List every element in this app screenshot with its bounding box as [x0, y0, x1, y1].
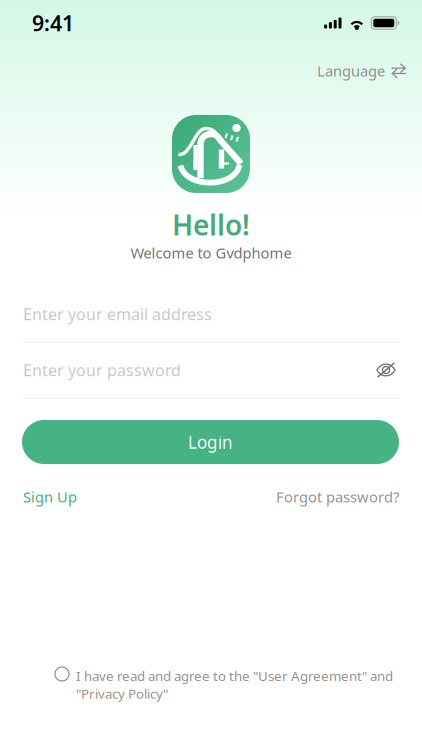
- staticText: Forgot password?: [276, 487, 399, 506]
- staticText: Hello!: [172, 206, 250, 243]
- button[interactable]: Sign Up: [23, 487, 77, 506]
- staticText: Sign Up: [23, 487, 77, 506]
- button[interactable]: Login: [22, 420, 399, 464]
- button[interactable]: Language: [313, 55, 411, 86]
- staticText: Login: [188, 430, 233, 453]
- staticText: I have read and agree to the "User Agree…: [76, 667, 393, 702]
- button[interactable]: Agree to the User Agreement and Privacy …: [55, 667, 69, 681]
- button[interactable]: Show password: [373, 358, 399, 381]
- staticText: Enter your password: [23, 359, 181, 381]
- staticText: 9:41: [32, 9, 74, 37]
- staticText: Enter your email address: [23, 303, 212, 325]
- staticText: Language: [317, 61, 385, 80]
- button[interactable]: Forgot password?: [276, 487, 399, 506]
- staticText: Welcome to Gvdphome: [130, 243, 291, 263]
